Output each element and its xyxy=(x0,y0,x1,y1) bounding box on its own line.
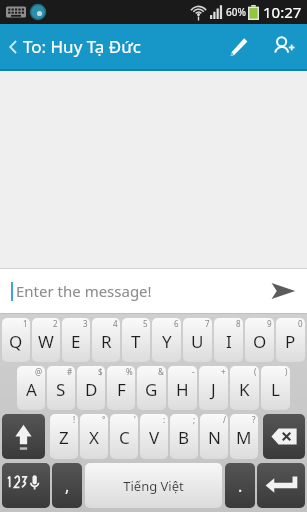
staticText: A xyxy=(26,378,37,401)
button[interactable]: Tiếng Việt xyxy=(85,463,222,508)
staticText: 7 xyxy=(205,318,210,329)
button[interactable]: W xyxy=(32,318,60,362)
staticText: ; xyxy=(193,414,196,425)
button[interactable]: Backspace xyxy=(263,414,305,459)
staticText: 60% xyxy=(226,5,246,19)
button[interactable]: I xyxy=(214,318,243,362)
button[interactable]: X xyxy=(80,414,108,459)
button[interactable]: U xyxy=(183,318,212,362)
staticText: 4 xyxy=(113,318,118,329)
staticText: W xyxy=(38,330,54,353)
staticText: 10:27 xyxy=(263,2,302,22)
staticText: F xyxy=(117,378,126,401)
staticText: 0 xyxy=(298,318,303,329)
button[interactable]: K xyxy=(230,366,259,410)
staticText: I xyxy=(226,330,232,353)
button[interactable]: J xyxy=(199,366,228,410)
button[interactable]: C xyxy=(110,414,138,459)
staticText: S xyxy=(56,378,66,401)
staticText: % xyxy=(126,366,133,377)
staticText: ? xyxy=(252,414,256,425)
button[interactable]: Symbols and voice input xyxy=(2,463,50,508)
button[interactable]: S xyxy=(47,366,75,410)
staticText: Q xyxy=(9,330,23,353)
button[interactable]: . xyxy=(225,463,255,508)
staticText: Z xyxy=(59,426,69,449)
staticText: 3 xyxy=(83,318,88,329)
staticText: M xyxy=(236,426,252,449)
staticText: L xyxy=(271,378,280,401)
button[interactable]: Y xyxy=(152,318,181,362)
button[interactable]: D xyxy=(77,366,105,410)
staticText: @ xyxy=(35,366,43,377)
staticText: : xyxy=(163,414,166,425)
staticText: & xyxy=(158,366,164,377)
button[interactable]: F xyxy=(107,366,135,410)
staticText: + xyxy=(221,366,226,377)
button[interactable]: B xyxy=(170,414,198,459)
button[interactable]: Z xyxy=(50,414,78,459)
staticText: H xyxy=(176,378,189,401)
staticText: R xyxy=(101,330,112,353)
button[interactable]: M xyxy=(230,414,258,459)
button[interactable]: O xyxy=(245,318,274,362)
staticText: G xyxy=(145,378,158,401)
staticText: E xyxy=(71,330,81,353)
staticText: $ xyxy=(98,366,103,377)
staticText: T xyxy=(131,330,141,353)
staticText: J xyxy=(211,378,216,401)
button[interactable]: T xyxy=(122,318,150,362)
button[interactable]: H xyxy=(168,366,197,410)
staticText: / xyxy=(223,414,226,425)
staticText: ( xyxy=(254,366,257,377)
staticText: ) xyxy=(285,366,288,377)
staticText: 8 xyxy=(236,318,241,329)
staticText: Y xyxy=(162,330,172,353)
staticText: C xyxy=(119,426,130,449)
button[interactable]: E xyxy=(62,318,90,362)
button[interactable]: L xyxy=(261,366,290,410)
button[interactable]: Compose xyxy=(215,24,261,69)
button[interactable]: A xyxy=(17,366,45,410)
button[interactable]: V xyxy=(140,414,168,459)
staticText: 9 xyxy=(267,318,272,329)
button[interactable]: To: Huy Tạ Đức xyxy=(6,24,215,69)
staticText: ' xyxy=(134,414,136,425)
staticText: 2 xyxy=(53,318,58,329)
button[interactable]: Enter the message! xyxy=(11,269,259,313)
staticText: D xyxy=(85,378,98,401)
staticText: K xyxy=(239,378,250,401)
button[interactable]: Send xyxy=(259,269,307,313)
staticText: . xyxy=(238,475,243,497)
button[interactable]: G xyxy=(137,366,166,410)
staticText: 5 xyxy=(143,318,148,329)
button[interactable]: R xyxy=(92,318,120,362)
staticText: V xyxy=(149,426,160,449)
button[interactable]: N xyxy=(200,414,228,459)
staticText: To: Huy Tạ Đức xyxy=(23,35,141,58)
button[interactable]: Enter xyxy=(257,463,305,508)
staticText: # xyxy=(67,366,73,377)
staticText: , xyxy=(65,475,70,497)
staticText: X xyxy=(89,426,99,449)
staticText: U xyxy=(191,330,204,353)
staticText: N xyxy=(208,426,221,449)
button[interactable]: , xyxy=(52,463,82,508)
staticText: 6 xyxy=(174,318,179,329)
button[interactable]: Add contact xyxy=(261,24,307,69)
staticText: ! xyxy=(73,414,76,425)
button[interactable]: Shift xyxy=(2,414,45,459)
staticText: P xyxy=(285,330,296,353)
staticText: ° xyxy=(102,414,106,425)
button[interactable]: P xyxy=(276,318,305,362)
staticText: Enter the message! xyxy=(16,281,152,301)
staticText: B xyxy=(178,426,190,449)
staticText: - xyxy=(192,366,195,377)
staticText: 1 xyxy=(23,318,28,329)
staticText: Tiếng Việt xyxy=(123,477,184,495)
button[interactable]: Q xyxy=(2,318,30,362)
staticText: O xyxy=(253,330,267,353)
